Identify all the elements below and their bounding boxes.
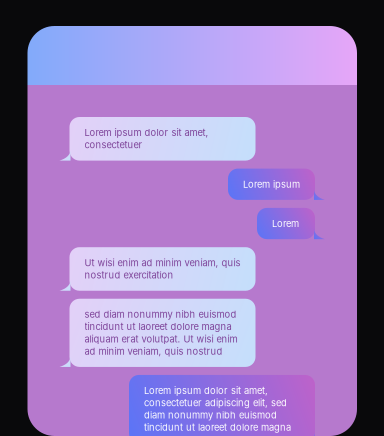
button[interactable]: sed diam nonummy nibh euismod tincidunt … <box>69 299 255 367</box>
button[interactable]: Lorem ipsum dolor sit amet, consectetuer <box>69 117 255 161</box>
staticText: Lorem ipsum dolor sit amet, consectetuer… <box>144 385 291 433</box>
button[interactable]: Lorem <box>257 208 315 239</box>
staticText: Lorem ipsum <box>243 179 300 190</box>
staticText: Lorem ipsum dolor sit amet, consectetuer <box>84 127 208 151</box>
staticText: Ut wisi enim ad minim veniam, quis nostr… <box>84 257 240 281</box>
button[interactable]: Lorem ipsum <box>228 169 315 200</box>
button[interactable]: Lorem ipsum dolor sit amet, consectetuer… <box>129 375 315 436</box>
staticText: sed diam nonummy nibh euismod tincidunt … <box>84 309 237 357</box>
staticText: Lorem <box>272 218 299 229</box>
button[interactable]: Ut wisi enim ad minim veniam, quis nostr… <box>69 247 255 291</box>
